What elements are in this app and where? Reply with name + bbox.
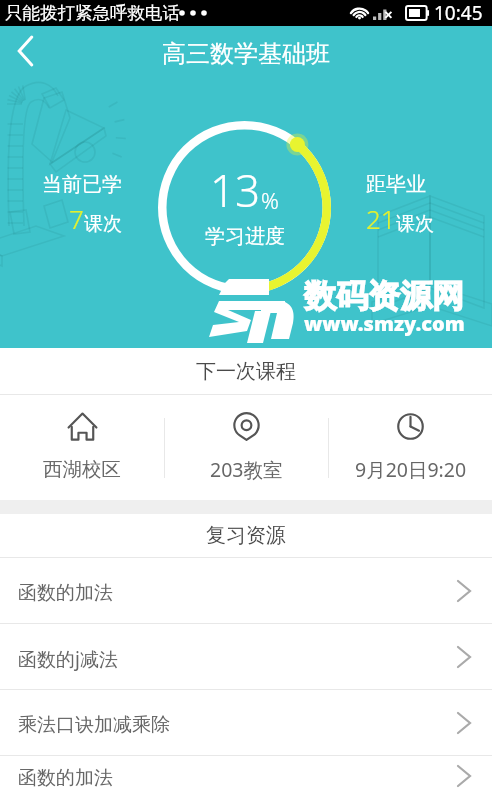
button[interactable]: 9月20日9:20 [329, 395, 492, 500]
staticText: 9月20日9:20 [355, 456, 467, 483]
staticText: 7 [69, 201, 84, 236]
staticText: 数码资源网 [304, 276, 464, 316]
staticText: 西湖校区 [43, 457, 121, 482]
button[interactable]: 乘法口诀加减乘除 [0, 690, 492, 755]
button[interactable]: 函数的j减法 [0, 624, 492, 689]
staticText: 10:45 [434, 0, 483, 26]
button[interactable]: 西湖校区 [0, 395, 164, 500]
button[interactable]: 203教室 [165, 395, 328, 500]
staticText: 学习进度 [205, 224, 285, 249]
staticText: 复习资源 [206, 523, 286, 548]
staticText: 21 [366, 201, 396, 236]
staticText: 课次 [396, 212, 434, 236]
staticText: 函数的加法 [18, 581, 113, 605]
staticText: 只能拨打紧急呼救电话 [5, 2, 180, 24]
staticText: 函数的加法 [18, 766, 113, 790]
button[interactable]: Back [0, 29, 50, 79]
staticText: 下一次课程 [196, 359, 296, 384]
staticText: 距毕业 [366, 172, 426, 197]
staticText: www.smzy.com [304, 310, 465, 337]
staticText: 当前已学 [42, 172, 122, 197]
staticText: 203教室 [210, 456, 283, 483]
button[interactable]: 函数的加法 [0, 756, 492, 796]
button[interactable]: 函数的加法 [0, 558, 492, 623]
staticText: 高三数学基础班 [162, 39, 330, 69]
staticText: % [261, 185, 279, 215]
staticText: 函数的j减法 [18, 646, 118, 672]
staticText: 乘法口诀加减乘除 [18, 713, 170, 737]
staticText: 课次 [84, 212, 122, 236]
staticText: 13 [210, 160, 261, 220]
